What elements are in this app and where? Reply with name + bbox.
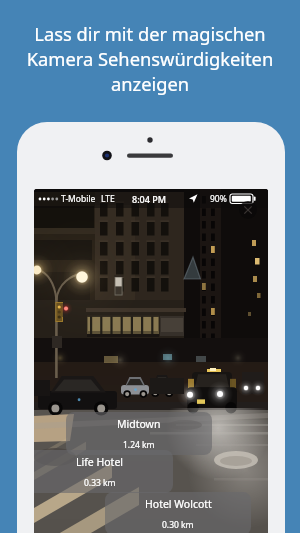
staticText: Lass dir mit der magischen Kamera Sehens…	[0, 21, 300, 96]
staticText: 1.24 km	[123, 439, 155, 451]
staticText: 0.33 km	[84, 477, 116, 489]
button[interactable]: Close	[239, 201, 257, 219]
staticText: 90%	[210, 193, 227, 205]
staticText: T-Mobile	[61, 193, 96, 205]
staticText: 0.30 km	[162, 519, 194, 531]
staticText: Midtown	[117, 417, 161, 431]
staticText: 8:04 PM	[132, 193, 166, 205]
staticText: Life Hotel	[76, 455, 124, 469]
staticText: LTE	[101, 193, 115, 205]
button[interactable]: Midtown	[66, 412, 212, 455]
button[interactable]: Life Hotel	[34, 450, 173, 493]
button[interactable]: Hotel Wolcott	[105, 492, 251, 533]
staticText: Hotel Wolcott	[145, 497, 212, 511]
